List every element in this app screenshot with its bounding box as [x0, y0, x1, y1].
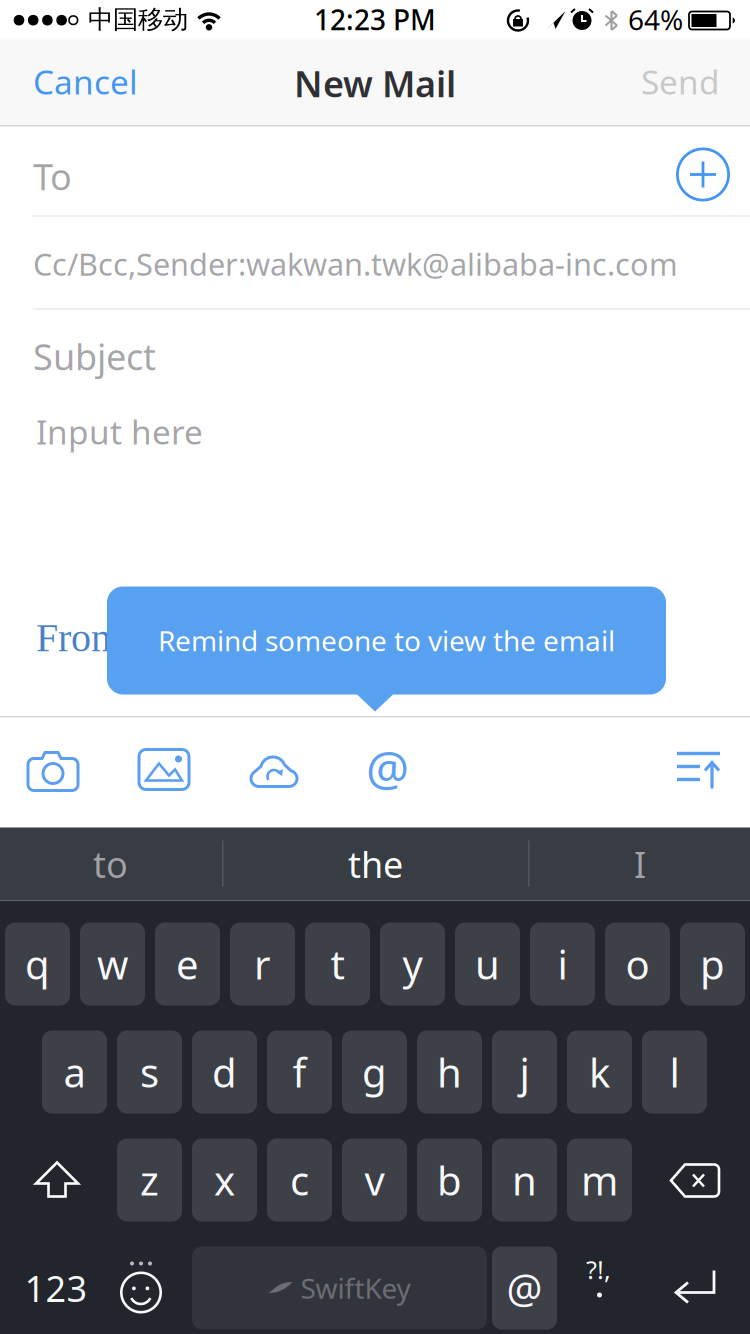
button[interactable]: Space [192, 1246, 487, 1329]
button[interactable]: u [455, 922, 520, 1005]
staticText: Send [641, 59, 720, 104]
staticText: x [214, 1153, 235, 1206]
staticText: To [33, 152, 72, 200]
staticText: I [634, 840, 646, 888]
button[interactable]: c [267, 1138, 332, 1221]
button[interactable]: y [380, 922, 445, 1005]
button[interactable]: n [492, 1138, 557, 1221]
staticText: k [589, 1045, 610, 1098]
button[interactable]: q [5, 922, 70, 1005]
button[interactable]: Cancel [0, 39, 138, 124]
staticText: h [437, 1045, 462, 1098]
staticText: b [437, 1153, 462, 1206]
staticText: f [292, 1045, 306, 1098]
staticText: o [625, 937, 649, 990]
button[interactable]: Numbers [10, 1246, 102, 1329]
button[interactable]: Attach photo [131, 741, 197, 797]
button[interactable]: w [80, 922, 145, 1005]
staticText: i [557, 937, 567, 990]
button[interactable]: Punctuation [576, 1252, 626, 1308]
button[interactable]: k [567, 1030, 632, 1113]
staticText: y [402, 937, 422, 990]
button[interactable]: Emoji [114, 1250, 168, 1314]
staticText: @ [506, 1261, 542, 1314]
staticText: z [140, 1153, 159, 1206]
button[interactable]: j [492, 1030, 557, 1113]
staticText: u [475, 937, 500, 990]
staticText: the [348, 840, 403, 888]
button[interactable]: Hide keyboard [669, 743, 729, 797]
button[interactable]: g [342, 1030, 407, 1113]
staticText: ?!, [586, 1252, 611, 1286]
staticText: d [212, 1045, 237, 1098]
staticText: 64% [628, 1, 683, 38]
staticText: @ [366, 735, 409, 799]
button[interactable]: i [530, 922, 595, 1005]
staticText: SwiftKey [300, 1269, 410, 1307]
staticText: v [364, 1153, 384, 1206]
button[interactable]: Mention [360, 729, 415, 805]
staticText: Cancel [33, 59, 138, 104]
button[interactable]: m [567, 1138, 632, 1221]
button[interactable]: o [605, 922, 670, 1005]
button[interactable]: h [417, 1030, 482, 1113]
button[interactable]: to [0, 827, 221, 900]
staticText: New Mail [294, 59, 456, 107]
staticText: Input here [36, 409, 203, 454]
button[interactable]: I [530, 827, 750, 900]
button[interactable]: a [42, 1030, 107, 1113]
button[interactable]: d [192, 1030, 257, 1113]
button[interactable]: Take photo [20, 742, 86, 800]
staticText: c [290, 1153, 309, 1206]
button[interactable]: Delete [661, 1154, 729, 1206]
button[interactable]: v [342, 1138, 407, 1221]
staticText: l [669, 1045, 679, 1098]
staticText: m [581, 1153, 618, 1206]
staticText: t [330, 937, 344, 990]
button[interactable]: Attach from cloud [241, 742, 307, 796]
staticText: to [93, 840, 128, 888]
button[interactable]: e [155, 922, 220, 1005]
button[interactable]: f [267, 1030, 332, 1113]
staticText: w [97, 937, 128, 990]
staticText: 123 [24, 1264, 87, 1312]
staticText: s [140, 1045, 159, 1098]
button[interactable]: x [192, 1138, 257, 1221]
staticText: g [362, 1045, 387, 1098]
button[interactable]: s [117, 1030, 182, 1113]
button[interactable]: the [223, 827, 528, 900]
button[interactable]: Shift [26, 1152, 88, 1206]
staticText: q [25, 937, 50, 990]
button[interactable]: t [305, 922, 370, 1005]
staticText: e [176, 937, 199, 990]
button[interactable]: b [417, 1138, 482, 1221]
staticText: 中国移动 [88, 4, 188, 35]
staticText: a [63, 1045, 85, 1098]
button[interactable]: r [230, 922, 295, 1005]
staticText: Subject [33, 332, 156, 380]
staticText: Remind someone to view the email [158, 622, 615, 659]
button[interactable]: l [642, 1030, 707, 1113]
button[interactable]: Return [664, 1260, 726, 1312]
button[interactable]: Add recipient [666, 137, 740, 211]
staticText: From [36, 615, 122, 660]
button[interactable]: Send [641, 39, 720, 124]
staticText: 12:23 PM [314, 1, 436, 38]
button[interactable]: z [117, 1138, 182, 1221]
staticText: j [519, 1045, 529, 1098]
staticText: n [512, 1153, 537, 1206]
staticText: r [254, 937, 271, 990]
staticText: Cc/Bcc,Sender:wakwan.twk@alibaba-inc.com [33, 243, 678, 284]
staticText: p [700, 937, 725, 990]
button[interactable]: p [680, 922, 745, 1005]
button[interactable]: @ [492, 1246, 557, 1329]
